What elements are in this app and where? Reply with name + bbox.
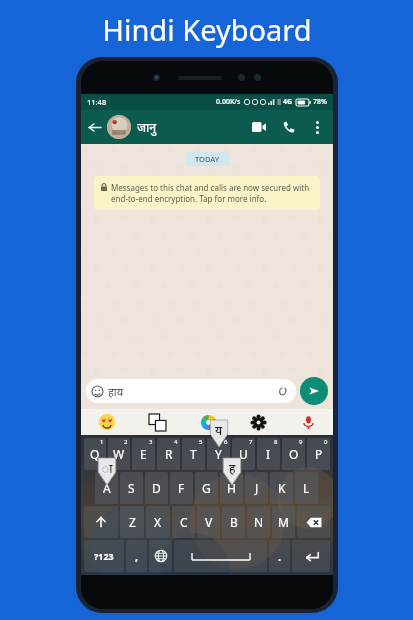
staticText: 11:48 xyxy=(87,97,107,107)
button[interactable]: Language xyxy=(149,540,172,572)
button[interactable]: Attach xyxy=(274,383,290,399)
staticText: ह xyxy=(229,460,236,476)
button[interactable]: Backspace xyxy=(297,506,330,538)
staticText: 78% xyxy=(313,97,327,107)
button[interactable]: Call xyxy=(274,112,304,142)
staticText: 5 xyxy=(199,438,203,446)
staticText: 3 xyxy=(149,438,153,446)
staticText: J xyxy=(255,480,259,496)
button[interactable]: Send xyxy=(300,377,328,405)
button[interactable]: D xyxy=(145,472,168,504)
button[interactable]: Y xyxy=(207,438,230,470)
button[interactable]: T xyxy=(182,438,205,470)
button[interactable]: Settings xyxy=(233,409,283,435)
staticText: D xyxy=(152,480,161,496)
staticText: 4 xyxy=(174,438,178,446)
staticText: R xyxy=(165,446,173,462)
button[interactable]: I xyxy=(257,438,280,470)
button[interactable]: जानु xyxy=(107,110,244,144)
button[interactable]: X xyxy=(146,506,170,538)
button[interactable]: Z xyxy=(120,506,144,538)
button[interactable]: R xyxy=(157,438,180,470)
button[interactable]: E xyxy=(132,438,155,470)
button[interactable]: Shift xyxy=(84,506,118,538)
button[interactable]: A xyxy=(95,472,118,504)
button[interactable]: G xyxy=(195,472,218,504)
staticText: I xyxy=(266,446,271,462)
staticText: य xyxy=(215,422,223,438)
button[interactable]: Space xyxy=(174,540,267,572)
staticText: Q xyxy=(90,446,100,462)
button[interactable]: Period xyxy=(269,540,290,572)
staticText: V xyxy=(205,514,213,530)
staticText: 0.00K/s xyxy=(216,97,241,107)
button[interactable]: P xyxy=(307,438,330,470)
staticText: ?123 xyxy=(94,550,114,562)
staticText: 1 xyxy=(100,438,104,446)
button[interactable]: B xyxy=(222,506,245,538)
button[interactable]: Enter xyxy=(292,540,330,572)
staticText: E xyxy=(140,446,147,462)
staticText: TODAY xyxy=(195,154,220,164)
staticText: 6 xyxy=(224,438,228,446)
staticText: M xyxy=(278,514,289,530)
button[interactable]: Theme xyxy=(183,409,233,435)
staticText: Z xyxy=(129,514,136,530)
button[interactable]: हाय xyxy=(86,379,296,403)
staticText: 0 xyxy=(324,438,328,446)
staticText: 7 xyxy=(249,438,253,446)
staticText: Messages to this chat and calls are now … xyxy=(111,182,313,204)
staticText: 4G xyxy=(283,97,293,107)
staticText: Hindi Keyboard xyxy=(102,10,312,49)
button[interactable]: Translate xyxy=(132,409,183,435)
staticText: N xyxy=(254,514,264,530)
staticText: H xyxy=(227,480,236,496)
staticText: Y xyxy=(215,446,222,462)
staticText: जानु xyxy=(137,119,157,135)
staticText: ा xyxy=(102,460,113,476)
button[interactable]: F xyxy=(170,472,193,504)
button[interactable]: M xyxy=(272,506,295,538)
staticText: A xyxy=(103,480,111,496)
staticText: हाय xyxy=(108,384,124,399)
button[interactable]: W xyxy=(108,438,130,470)
button[interactable]: L xyxy=(295,472,318,504)
staticText: X xyxy=(154,514,162,530)
staticText: 9 xyxy=(299,438,303,446)
button[interactable]: S xyxy=(120,472,143,504)
staticText: T xyxy=(190,446,197,462)
staticText: . xyxy=(278,549,282,564)
staticText: C xyxy=(180,514,188,530)
button[interactable]: Messages to this chat and calls are now … xyxy=(94,176,320,210)
staticText: O xyxy=(289,446,299,462)
button[interactable]: O xyxy=(282,438,305,470)
staticText: G xyxy=(202,480,211,496)
button[interactable]: K xyxy=(270,472,293,504)
button[interactable]: Q xyxy=(84,438,106,470)
button[interactable]: Emoji xyxy=(81,409,132,435)
staticText: F xyxy=(178,480,185,496)
button[interactable]: V xyxy=(197,506,220,538)
button[interactable]: Symbols xyxy=(84,540,124,572)
button[interactable]: U xyxy=(232,438,255,470)
staticText: B xyxy=(230,514,238,530)
button[interactable]: H xyxy=(220,472,243,504)
button[interactable]: C xyxy=(172,506,195,538)
button[interactable]: N xyxy=(247,506,270,538)
staticText: U xyxy=(239,446,248,462)
staticText: 2 xyxy=(124,438,128,446)
staticText: S xyxy=(128,480,135,496)
staticText: L xyxy=(303,480,310,496)
button[interactable]: J xyxy=(245,472,268,504)
button[interactable]: Comma xyxy=(126,540,147,572)
staticText: K xyxy=(278,480,286,496)
button[interactable]: Video call xyxy=(244,112,274,142)
staticText: P xyxy=(315,446,323,462)
button[interactable]: More options xyxy=(304,114,330,140)
staticText: W xyxy=(113,446,125,462)
button[interactable]: Back xyxy=(81,114,107,140)
button[interactable]: Voice input xyxy=(283,409,333,435)
staticText: 8 xyxy=(274,438,278,446)
staticText: , xyxy=(135,549,139,564)
